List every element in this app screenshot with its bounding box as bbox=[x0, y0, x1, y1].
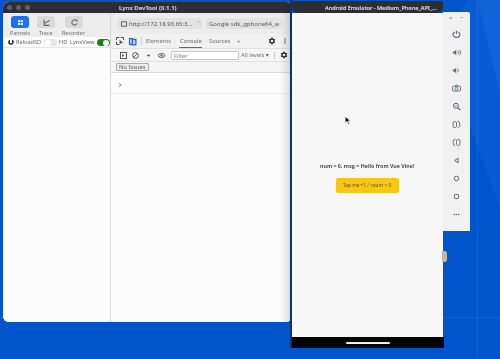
button[interactable]: Recorder bbox=[62, 16, 85, 36]
staticText: http://172.18.93.65:3... bbox=[129, 20, 193, 28]
button[interactable]: camera bbox=[443, 79, 470, 97]
button[interactable]: Reload bbox=[8, 39, 14, 45]
staticText: HD bbox=[59, 38, 68, 46]
button[interactable]: Inspect element bbox=[116, 37, 124, 45]
button[interactable]: − bbox=[460, 14, 464, 22]
button[interactable]: Window control bbox=[25, 5, 30, 10]
button[interactable]: Elements bbox=[146, 37, 172, 45]
staticText: Google sdk_gphone64_an bbox=[209, 20, 279, 28]
button[interactable]: power bbox=[443, 25, 470, 43]
button[interactable]: Trace bbox=[37, 16, 55, 36]
staticText: Pannels bbox=[10, 29, 30, 36]
button[interactable]: Settings bbox=[280, 51, 288, 59]
staticText: ReloadSD bbox=[16, 38, 42, 46]
button[interactable]: home bbox=[443, 169, 470, 187]
button[interactable]: Toggle off bbox=[44, 39, 57, 46]
button[interactable]: Execution context bbox=[120, 52, 127, 59]
button[interactable]: Clear console bbox=[132, 52, 139, 59]
button[interactable]: No Issues bbox=[116, 63, 149, 71]
button[interactable]: Settings bbox=[268, 37, 276, 45]
button[interactable]: Toggle device toolbar bbox=[128, 37, 137, 46]
button[interactable]: http://172.18.93.65:3... bbox=[118, 18, 202, 29]
button[interactable]: Window control bbox=[7, 5, 12, 10]
button[interactable]: rotl bbox=[443, 115, 470, 133]
staticText: num = 0, msg = Hello from Vue Vine! bbox=[320, 162, 415, 169]
button[interactable]: Google sdk_gphone64_an bbox=[206, 18, 282, 29]
button[interactable]: zoom bbox=[443, 97, 470, 115]
staticText: No Issues bbox=[119, 63, 146, 71]
staticText: » bbox=[237, 37, 241, 45]
staticText: Filter bbox=[174, 52, 188, 60]
staticText: Console bbox=[180, 37, 202, 45]
button[interactable]: Tap me +1 / count = 0 bbox=[336, 178, 399, 193]
staticText: Recorder bbox=[62, 29, 85, 36]
button[interactable]: recents bbox=[443, 187, 470, 205]
button[interactable]: volup bbox=[443, 43, 470, 61]
staticText: Android Emulator - Medium_Phone_API_... bbox=[325, 4, 437, 11]
button[interactable]: Show console sidebar bbox=[158, 52, 165, 59]
button[interactable]: Window control bbox=[16, 5, 21, 10]
button[interactable]: more bbox=[443, 205, 470, 223]
button[interactable]: More options bbox=[281, 37, 289, 45]
button[interactable]: rotr bbox=[443, 133, 470, 151]
staticText: Tap me +1 / count = 0 bbox=[343, 182, 392, 189]
button[interactable]: Pannels bbox=[10, 16, 30, 36]
button[interactable]: Console bbox=[179, 34, 202, 48]
button[interactable]: Toggle on bbox=[97, 39, 110, 46]
button[interactable]: Sources bbox=[209, 37, 231, 45]
staticText: LynxView bbox=[70, 38, 95, 46]
button[interactable]: Filter bbox=[171, 51, 239, 60]
button[interactable]: All levels ▾ bbox=[241, 51, 269, 59]
button[interactable]: × bbox=[449, 14, 453, 22]
button[interactable]: back bbox=[443, 151, 470, 169]
staticText: Trace bbox=[39, 29, 53, 36]
button[interactable]: voldown bbox=[443, 61, 470, 79]
button[interactable]: Filter options bbox=[146, 53, 151, 58]
staticText: Lynx DevTool (0.1.1) bbox=[119, 4, 177, 12]
